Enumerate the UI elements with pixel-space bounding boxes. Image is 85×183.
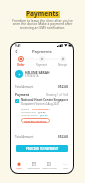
button[interactable]: Home [11,160,26,170]
staticText: Invoice [21,107,30,110]
staticText: Payments [26,9,59,18]
staticText: 9:41 [15,44,21,48]
button[interactable]: VIEW BILL DETAILS [21,118,50,123]
button[interactable]: Select bill [15,99,19,103]
button[interactable]: Medical Records [41,160,57,170]
button[interactable]: Receipt [52,56,73,67]
other: Home [17,162,21,166]
staticText: S7654321A [25,74,39,78]
button[interactable]: Payment [31,56,52,67]
staticText: Total Amount [15,135,34,139]
staticText: Amount to pay [21,113,38,116]
staticText: $52.60 [38,110,46,113]
staticText: Showing 1 of 1 bill [46,93,69,97]
other: More [63,162,67,166]
button[interactable]: Back [13,48,20,55]
button[interactable]: Appointments [26,160,41,170]
staticText: Medical Records [42,167,57,170]
other: Medical Records [47,162,51,166]
staticText: $52.60 [40,113,48,116]
button[interactable]: More [57,160,73,170]
staticText: Appointments [27,167,40,170]
staticText: More [63,167,68,170]
staticText: $52.60 [58,135,69,139]
staticText: Payment [36,63,47,67]
staticText: Order [17,63,25,67]
staticText: National Heart Centre Singapore [21,98,69,102]
staticText: $52.60 [58,85,69,89]
staticText: PROCEED TO PAYMENT [26,147,59,151]
staticText: HELENE SARAH [25,70,50,74]
staticText: Payments [32,49,52,55]
staticText: Total Amount [15,85,34,89]
staticText: Home [16,167,22,170]
staticText: IN12345678901 [32,107,50,110]
other: Appointments [32,162,36,166]
button[interactable]: Order [11,56,31,67]
staticText: Payment [15,93,30,97]
staticText: Outpatient Visit on 4 Aug 2021 [21,102,60,106]
staticText: Payment due [21,110,36,113]
staticText: Freedom to leave the clinic after you've… [6,18,79,30]
button[interactable]: PROCEED TO PAYMENT [16,145,68,152]
staticText: VIEW BILL DETAILS [24,119,47,122]
staticText: Receipt [58,63,67,67]
